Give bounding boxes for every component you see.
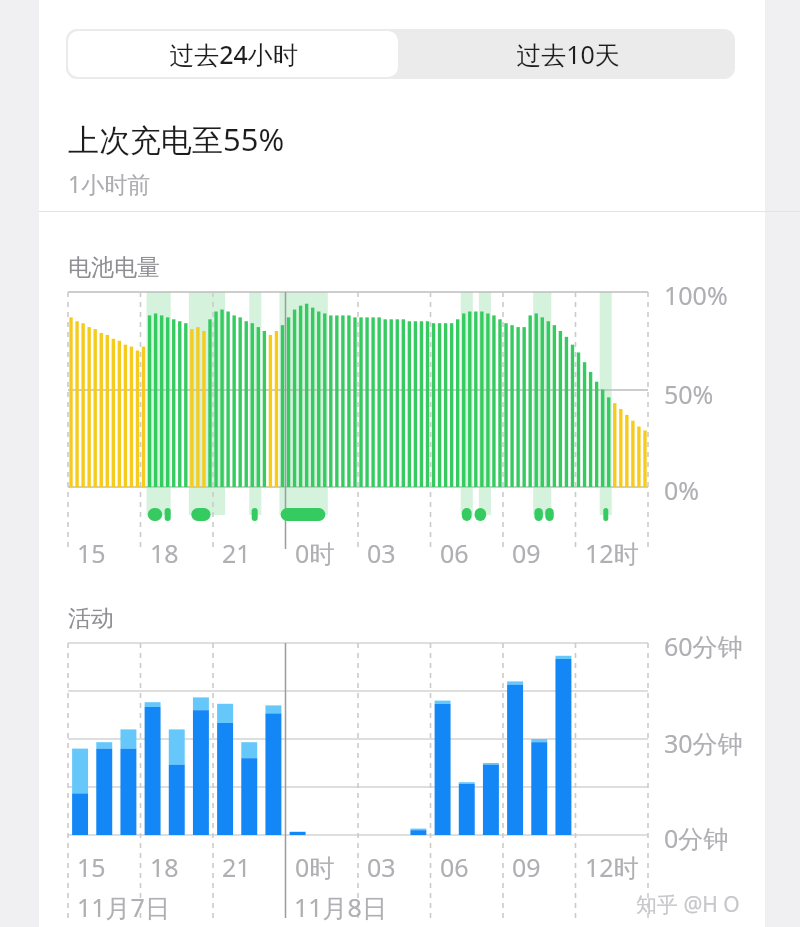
staticText: 03 xyxy=(367,850,396,884)
staticText: 电池电量 xyxy=(68,253,160,282)
staticText: 15 xyxy=(77,850,106,884)
staticText: 0% xyxy=(664,473,700,507)
staticText: 活动 xyxy=(68,604,114,633)
staticText: 0分钟 xyxy=(664,821,729,855)
staticText: 0时 xyxy=(295,850,335,884)
staticText: 1小时前 xyxy=(68,168,151,199)
staticText: 21 xyxy=(222,536,251,570)
staticText: 过去10天 xyxy=(516,37,620,71)
staticText: 18 xyxy=(150,536,179,570)
staticText: 0时 xyxy=(295,536,335,570)
staticText: 18 xyxy=(150,850,179,884)
staticText: 50% xyxy=(664,377,714,411)
button[interactable]: 过去24小时 xyxy=(68,31,398,77)
staticText: 03 xyxy=(367,536,396,570)
staticText: 06 xyxy=(440,536,469,570)
staticText: 12时 xyxy=(585,536,639,570)
staticText: 06 xyxy=(440,850,469,884)
staticText: 11月8日 xyxy=(294,890,387,924)
staticText: 09 xyxy=(512,536,541,570)
staticText: 30分钟 xyxy=(664,726,743,760)
staticText: 15 xyxy=(77,536,106,570)
staticText: 12时 xyxy=(585,850,639,884)
button[interactable]: 过去10天 xyxy=(400,29,735,79)
staticText: 11月7日 xyxy=(77,890,170,924)
staticText: 过去24小时 xyxy=(169,37,298,71)
staticText: 09 xyxy=(512,850,541,884)
staticText: 60分钟 xyxy=(664,629,743,663)
staticText: 知乎 @H O xyxy=(636,890,740,919)
staticText: 上次充电至55% xyxy=(68,118,285,160)
staticText: 21 xyxy=(222,850,251,884)
staticText: 100% xyxy=(664,278,728,312)
